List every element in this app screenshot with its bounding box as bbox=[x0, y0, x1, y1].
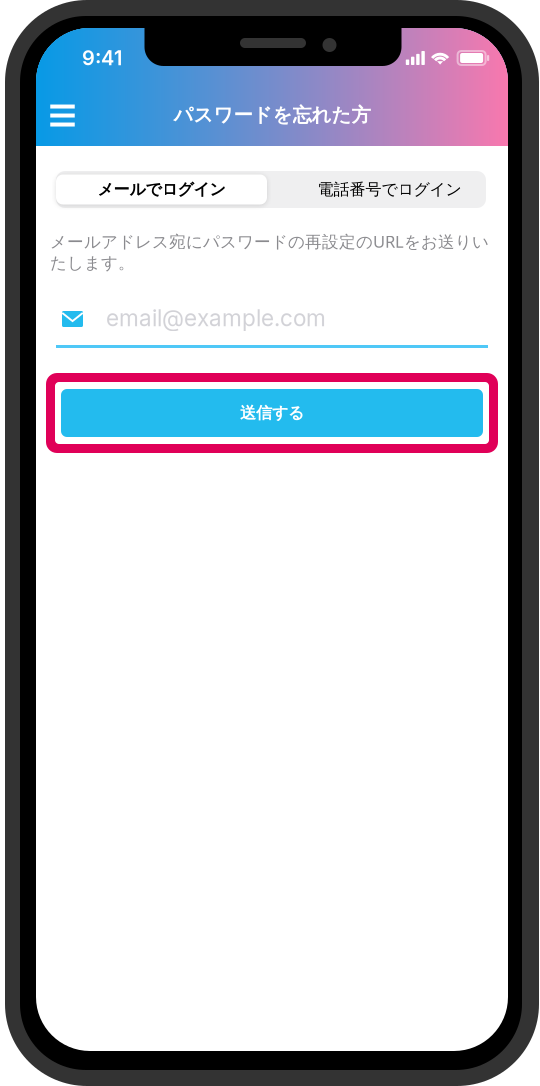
button[interactable]: 電話番号でログイン bbox=[267, 171, 486, 208]
staticText: email@example.com bbox=[106, 304, 326, 332]
staticText: 9:41 bbox=[82, 46, 122, 70]
staticText: パスワードを忘れた方 bbox=[173, 103, 370, 127]
button[interactable]: Menu bbox=[40, 93, 84, 137]
staticText: 電話番号でログイン bbox=[317, 179, 461, 200]
staticText: メールアドレス宛にパスワードの再設定のURLをお送りい たします。 bbox=[50, 230, 489, 273]
staticText: メールでログイン bbox=[97, 179, 225, 200]
button[interactable]: メールでログイン bbox=[55, 171, 267, 208]
staticText: 送信する bbox=[240, 403, 304, 423]
button[interactable]: 送信する bbox=[61, 389, 483, 437]
